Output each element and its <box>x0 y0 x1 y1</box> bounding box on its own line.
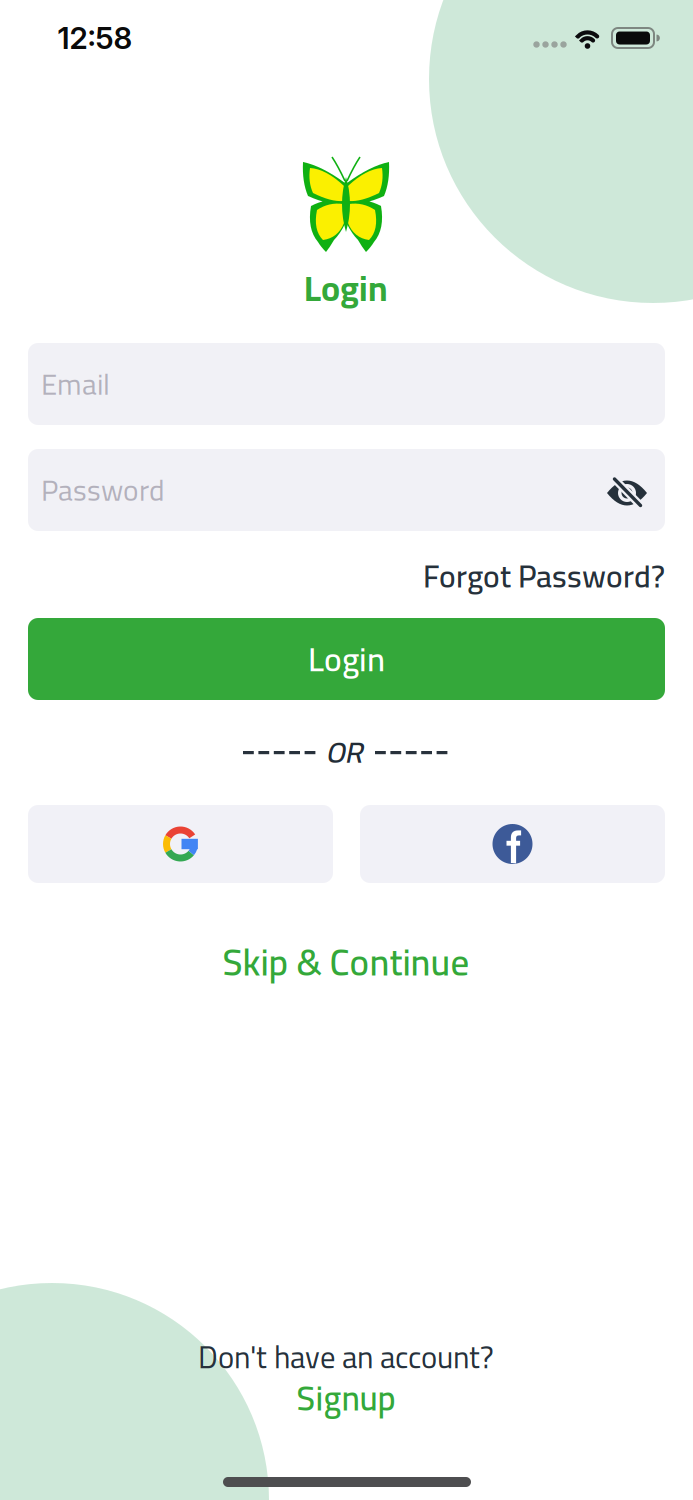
staticText: Login <box>304 255 388 321</box>
button[interactable]: Email <box>28 343 665 425</box>
staticText: Email <box>41 356 110 411</box>
staticText: Forgot Password? <box>423 547 665 605</box>
staticText: Don't have an account? <box>198 1328 494 1386</box>
button[interactable]: Show password <box>605 476 649 510</box>
staticText: Skip & Continue <box>222 928 469 996</box>
staticText: Login <box>308 628 385 690</box>
staticText: Signup <box>296 1366 395 1430</box>
button[interactable]: Continue with Facebook <box>360 805 665 883</box>
staticText: Password <box>41 462 165 517</box>
button[interactable]: Login <box>28 618 665 700</box>
button[interactable]: Forgot Password? <box>423 547 665 605</box>
button[interactable]: Password <box>28 449 665 531</box>
button[interactable]: Signup <box>296 1366 395 1430</box>
staticText: OR <box>325 724 362 779</box>
button[interactable]: Continue with Google <box>28 805 333 883</box>
button[interactable]: Skip & Continue <box>222 928 469 996</box>
staticText: 12:58 <box>57 20 132 56</box>
